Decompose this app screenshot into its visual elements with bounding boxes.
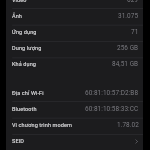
staticText: 256 GB	[117, 44, 139, 52]
staticText: 60:81:10:58:33:CC	[85, 105, 139, 113]
other: More	[135, 138, 139, 145]
button[interactable]: Dung lượng	[6, 40, 143, 56]
staticText: Ứng dụng	[12, 29, 37, 35]
button[interactable]: Ảnh	[6, 8, 143, 24]
staticText: Địa chỉ Wi-Fi	[12, 90, 44, 96]
staticText: 84,51 GB	[112, 60, 139, 68]
staticText: 629	[127, 0, 139, 4]
button[interactable]: Địa chỉ Wi-Fi	[6, 85, 143, 101]
staticText: 60:81:10:57:D2:B8	[85, 89, 139, 97]
staticText: Khả dụng	[12, 61, 37, 67]
staticText: SEID	[12, 138, 24, 144]
staticText: Dung lượng	[12, 45, 42, 51]
button[interactable]: Khả dụng	[6, 56, 143, 72]
staticText: Video	[12, 0, 27, 3]
staticText: 1.78.02	[117, 121, 139, 129]
staticText: Ảnh	[12, 13, 23, 19]
button[interactable]: SEID	[6, 133, 143, 149]
button[interactable]: Video	[6, 0, 143, 8]
staticText: 71	[131, 28, 139, 36]
staticText: 31.075	[118, 12, 139, 20]
button[interactable]: Ứng dụng	[6, 24, 143, 40]
button[interactable]: Bluetooth	[6, 101, 143, 117]
staticText: Ví chương trình modem	[12, 122, 72, 128]
button[interactable]: Ví chương trình modem	[6, 117, 143, 133]
staticText: Bluetooth	[12, 106, 37, 112]
